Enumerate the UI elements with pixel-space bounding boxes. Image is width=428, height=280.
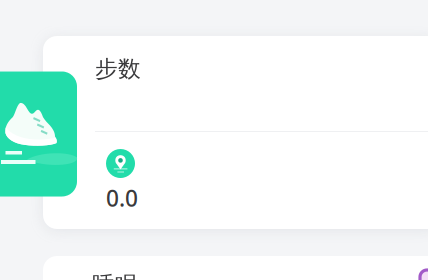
staticText: 睡眠 bbox=[92, 271, 138, 280]
staticText: 步数 bbox=[95, 55, 141, 83]
button[interactable]: 步数 bbox=[43, 36, 428, 229]
staticText: 0.0 bbox=[106, 183, 138, 213]
button[interactable]: 睡眠 bbox=[43, 256, 428, 280]
